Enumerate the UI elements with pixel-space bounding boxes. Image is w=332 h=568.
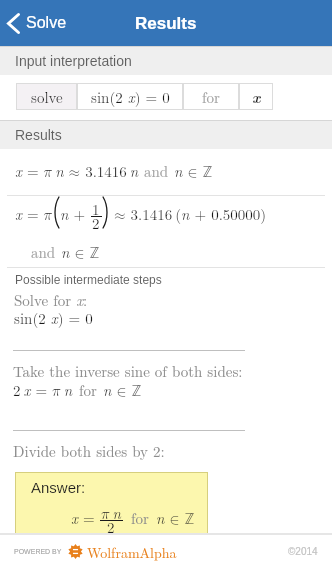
staticText: n ∈ ℤ <box>61 241 100 262</box>
staticText: x = 𝜋 n ≈ 3.1416 n <box>15 160 139 181</box>
staticText: WolframAlpha <box>87 542 177 562</box>
staticText: Input interpretation <box>15 53 132 69</box>
staticText: Results <box>135 14 197 33</box>
other: Wolfram Alpha <box>68 544 83 559</box>
staticText: sin(2 x) = 0 <box>14 307 93 328</box>
staticText: sin(2 x) = 0 <box>91 86 170 107</box>
staticText: x = 𝜋 <box>15 203 53 224</box>
staticText: ≈ 3.1416 (n + 0.50000) <box>109 203 267 224</box>
staticText: Answer: <box>31 479 86 496</box>
staticText: Solve for x: <box>14 289 88 310</box>
staticText: ©2014 <box>288 546 318 557</box>
staticText: and <box>31 241 56 262</box>
staticText: Possible intermediate steps <box>15 273 162 286</box>
staticText: for <box>131 507 149 528</box>
staticText: 1 <box>92 198 100 219</box>
button[interactable]: Input interpretation <box>0 47 332 75</box>
staticText: 2 x = 𝜋 n <box>13 379 73 400</box>
staticText: 2 <box>107 516 115 533</box>
staticText: Divide both sides by 2: <box>13 440 165 461</box>
staticText: 2 <box>92 212 100 233</box>
staticText: POWERED BY <box>14 548 62 556</box>
staticText: n ∈ ℤ <box>156 507 195 528</box>
staticText: for <box>79 379 97 400</box>
button[interactable]: Solve <box>0 0 77 46</box>
staticText: n + <box>60 203 91 224</box>
staticText: n ∈ ℤ <box>103 379 142 400</box>
staticText: x <box>252 86 261 108</box>
staticText: for <box>202 86 220 107</box>
staticText: Results <box>15 127 62 143</box>
staticText: and <box>144 160 169 181</box>
staticText: solve <box>31 86 63 107</box>
staticText: Solve <box>26 14 67 32</box>
staticText: x = <box>71 507 100 528</box>
button[interactable]: Results <box>0 121 332 149</box>
staticText: 𝜋 n <box>101 502 121 523</box>
staticText: n ∈ ℤ <box>174 160 213 181</box>
staticText: Take the inverse sine of both sides: <box>13 360 243 381</box>
button[interactable]: Answer: <box>16 473 207 533</box>
